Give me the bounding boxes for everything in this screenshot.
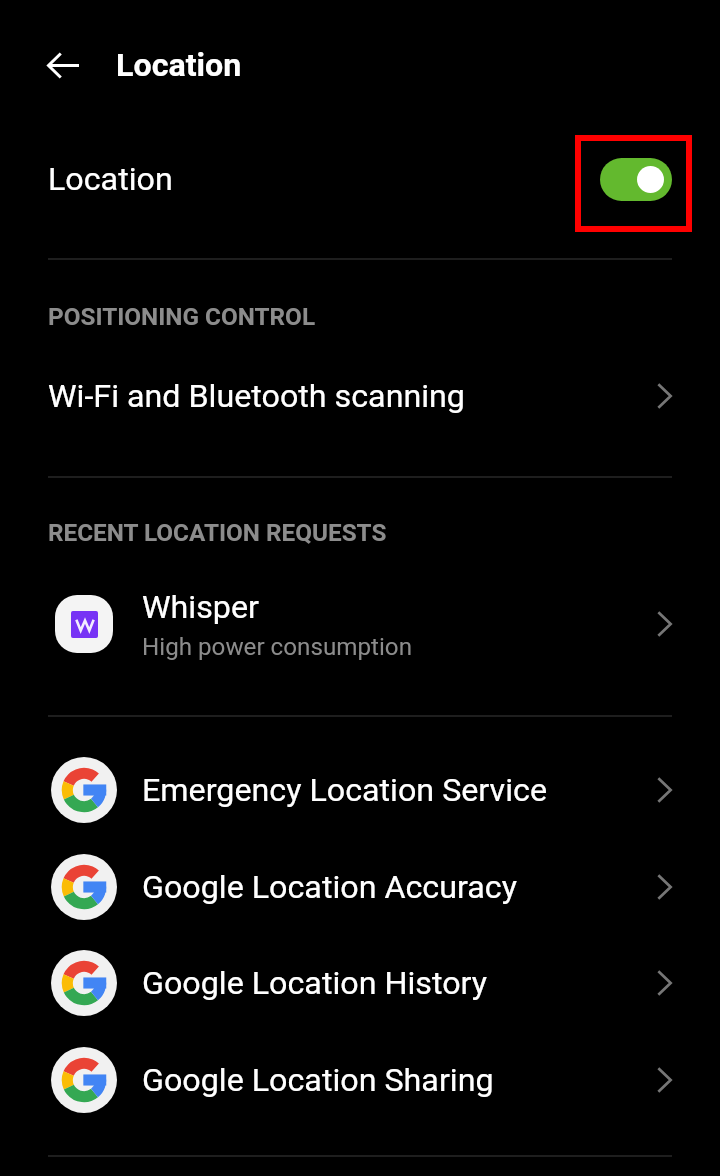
staticText: Google Location Sharing — [142, 1061, 494, 1099]
button[interactable]: Emergency Location Service — [0, 742, 720, 838]
staticText: Google Location Accuracy — [142, 868, 517, 906]
button[interactable]: Google Location History — [0, 935, 720, 1031]
staticText: Wi-Fi and Bluetooth scanning — [48, 377, 465, 415]
staticText: High power consumption — [142, 633, 412, 661]
staticText: Google Location History — [142, 964, 488, 1002]
staticText: Location — [48, 160, 173, 198]
button[interactable]: Google Location Sharing — [0, 1032, 720, 1128]
staticText: RECENT LOCATION REQUESTS — [48, 518, 387, 546]
staticText: Whisper — [142, 588, 259, 626]
staticText: Emergency Location Service — [142, 771, 547, 809]
staticText: Location — [116, 46, 242, 84]
button[interactable]: Whisper — [0, 576, 720, 672]
button[interactable]: Google Location Accuracy — [0, 839, 720, 935]
button[interactable]: Back — [31, 33, 95, 97]
button[interactable]: Wi-Fi and Bluetooth scanning — [0, 350, 720, 442]
staticText: POSITIONING CONTROL — [48, 302, 316, 330]
button[interactable]: Location — [0, 132, 720, 226]
